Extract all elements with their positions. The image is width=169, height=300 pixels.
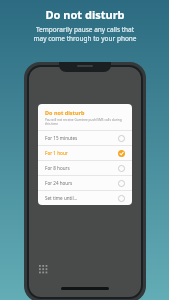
button[interactable]: For 1 hour	[38, 146, 132, 160]
staticText: You will not receive Gumtree push/SMS ca…	[45, 118, 125, 126]
staticText: For 8 hours	[45, 165, 118, 171]
staticText: #	[119, 125, 125, 137]
button[interactable]: For 8 hours	[38, 161, 132, 175]
staticText: For 1 hour	[45, 150, 118, 156]
button[interactable]: Keypad	[39, 265, 49, 275]
staticText: Do not disturb	[45, 7, 125, 22]
staticText: *	[45, 125, 50, 137]
button[interactable]: Set time until…	[38, 191, 132, 205]
staticText: Temporarily pause any calls that may com…	[33, 25, 137, 43]
button[interactable]: For 15 minutes	[38, 131, 132, 145]
staticText: Set time until…	[45, 195, 118, 201]
staticText: For 15 minutes	[45, 135, 118, 141]
staticText: For 24 hours	[45, 180, 118, 186]
staticText: Do not disturb	[45, 109, 85, 116]
staticText: 0	[82, 125, 88, 137]
button[interactable]: Call	[71, 143, 99, 171]
button[interactable]: For 24 hours	[38, 176, 132, 190]
